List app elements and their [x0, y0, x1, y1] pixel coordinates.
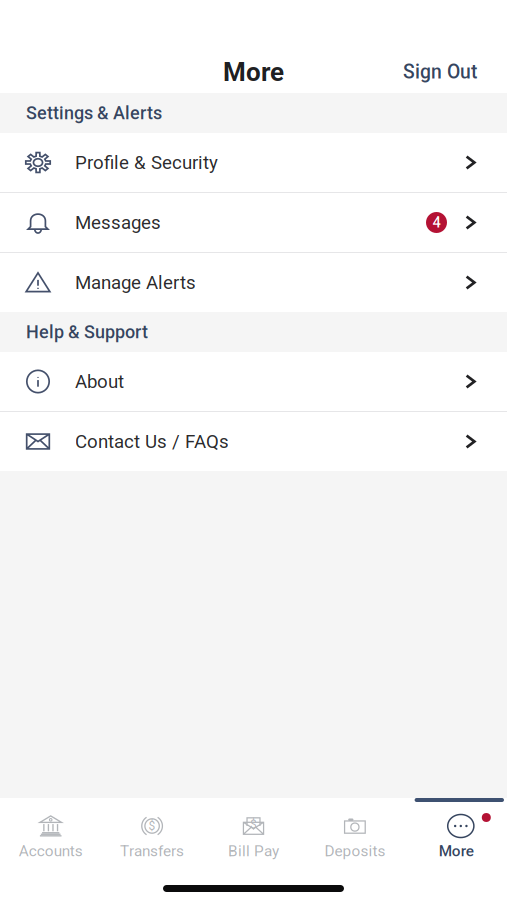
staticText: Accounts [19, 842, 83, 860]
staticText: More [223, 57, 284, 87]
staticText: Help & Support [26, 321, 148, 343]
staticText: Messages [75, 212, 161, 233]
button[interactable]: Profile & Security [0, 133, 507, 192]
staticText: Sign Out [403, 61, 477, 83]
button[interactable]: Manage Alerts [0, 253, 507, 312]
button[interactable]: $ [101, 798, 203, 877]
staticText: Contact Us / FAQs [75, 431, 229, 452]
button[interactable]: Contact Us / FAQs [0, 412, 507, 471]
staticText: About [75, 371, 124, 392]
staticText: 4 [432, 214, 440, 231]
button[interactable]: Accounts [0, 798, 101, 877]
button[interactable]: Messages [0, 193, 507, 252]
staticText: Manage Alerts [75, 272, 196, 293]
staticText: Transfers [120, 842, 184, 860]
button[interactable]: Deposits [304, 798, 406, 877]
button[interactable]: More [406, 798, 507, 877]
button[interactable]: $ [203, 798, 304, 877]
button[interactable]: About [0, 352, 507, 411]
staticText: Profile & Security [75, 152, 218, 173]
staticText: Bill Pay [228, 842, 279, 860]
button[interactable]: Sign Out [393, 55, 487, 89]
staticText: Deposits [324, 842, 385, 860]
staticText: $ [149, 819, 156, 833]
staticText: $ [250, 817, 257, 831]
staticText: Settings & Alerts [26, 102, 162, 124]
staticText: More [439, 842, 474, 860]
